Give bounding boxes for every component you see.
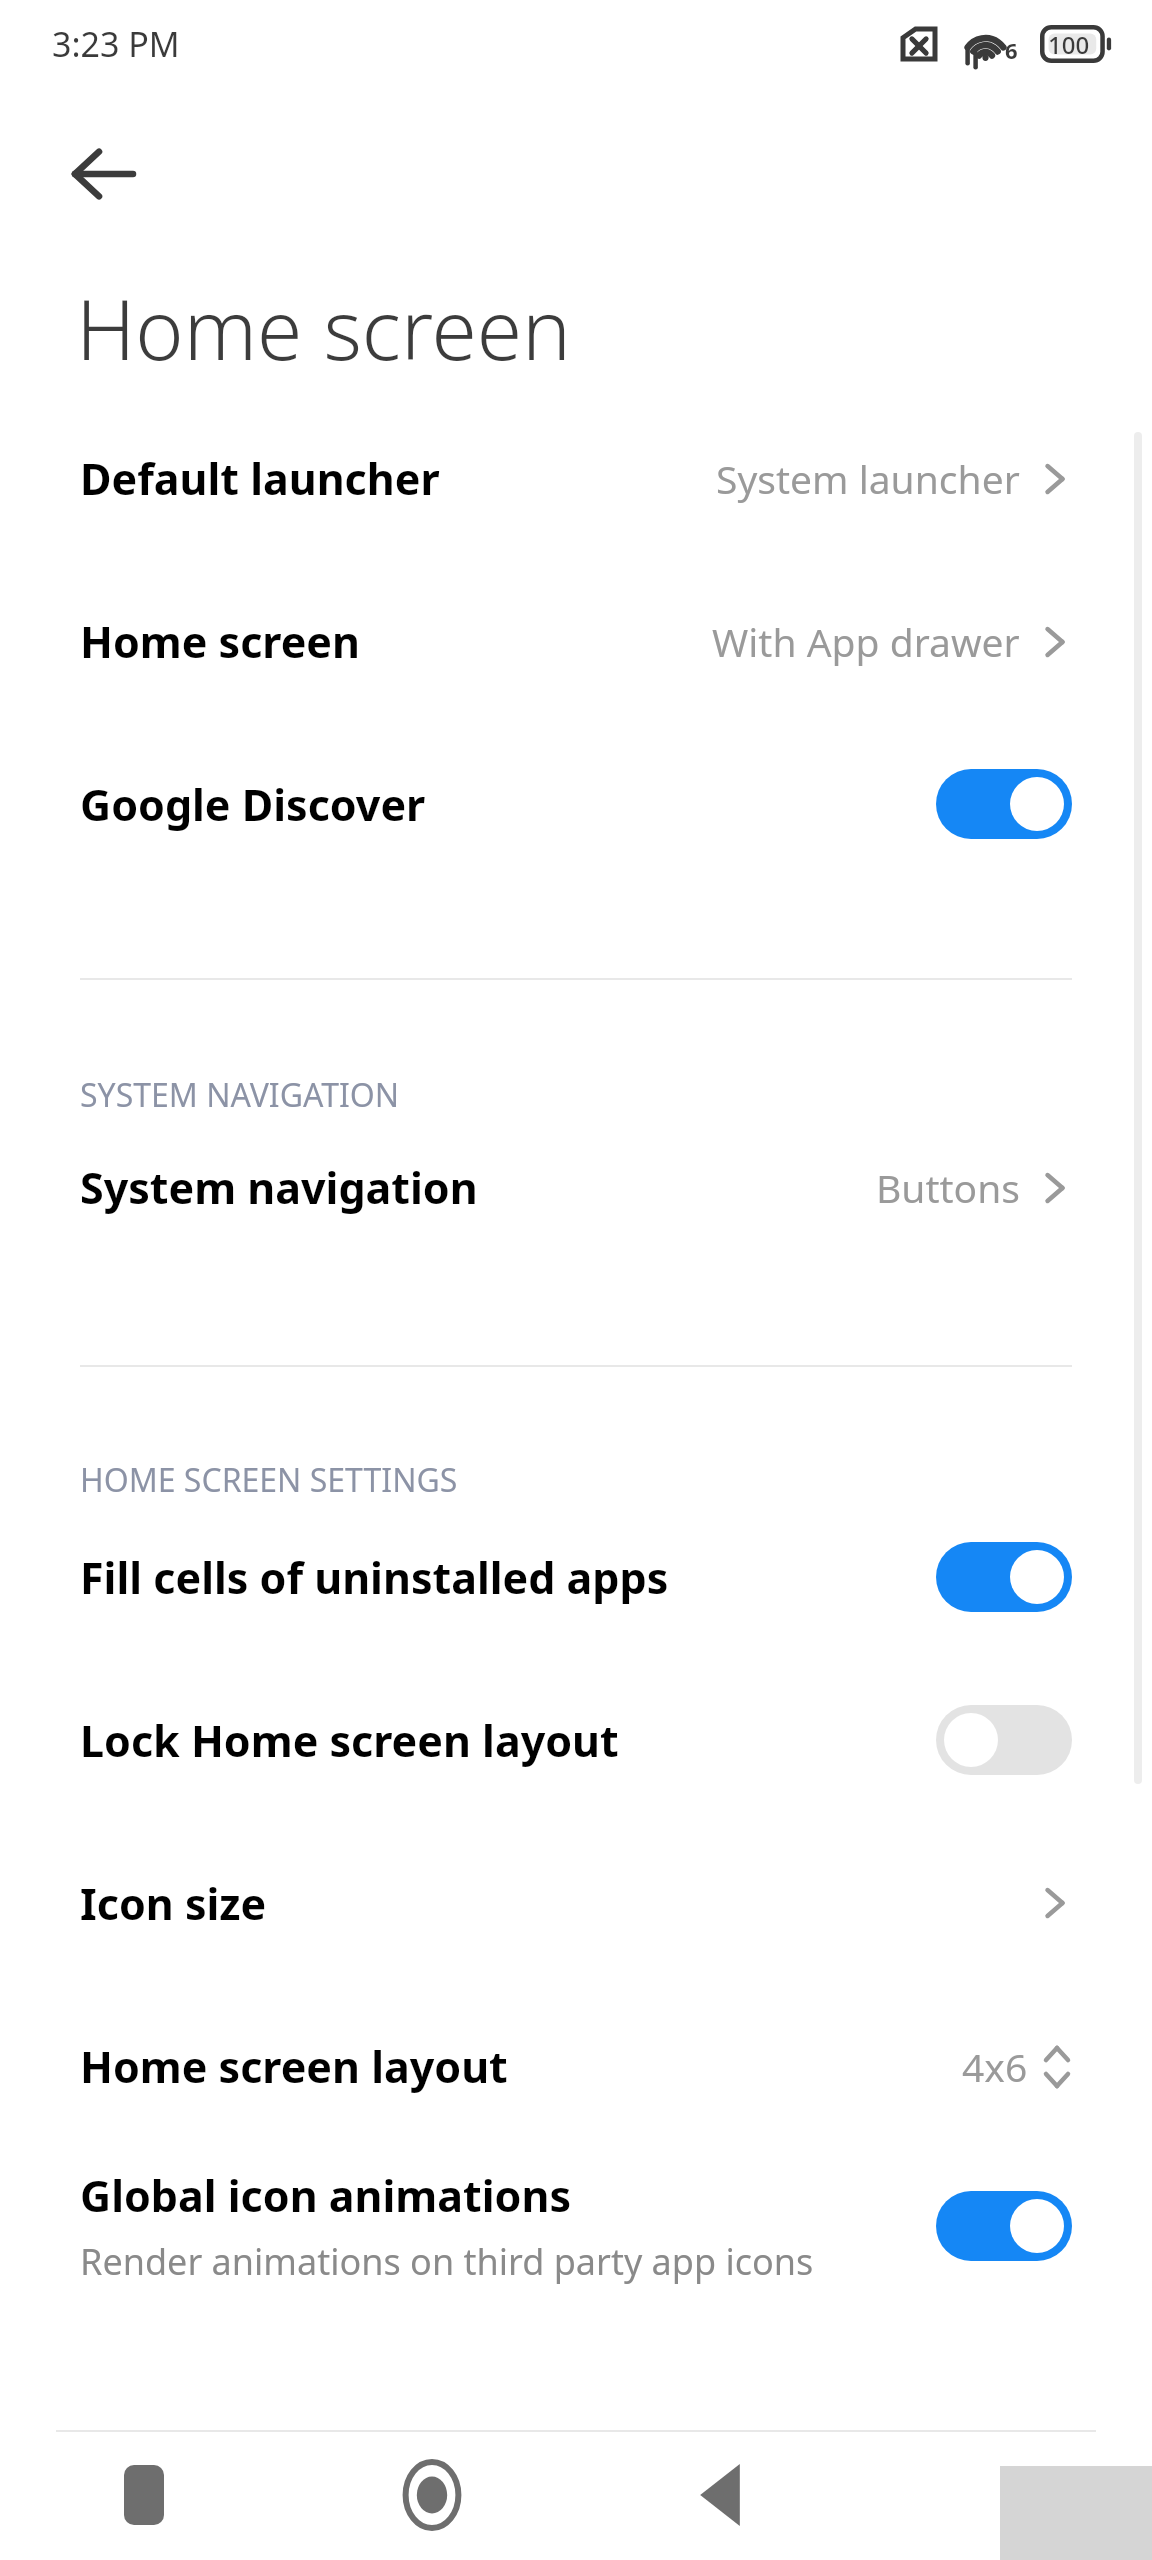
button[interactable]: On bbox=[936, 1542, 1072, 1612]
button[interactable]: Global icon animations bbox=[0, 2131, 1152, 2321]
staticText: System launcher bbox=[716, 452, 1020, 505]
staticText: Global icon animations bbox=[80, 2166, 571, 2225]
staticText: Render animations on third party app ico… bbox=[80, 2237, 814, 2286]
staticText: Fill cells of uninstalled apps bbox=[80, 1548, 669, 1607]
button[interactable]: On bbox=[936, 2191, 1072, 2261]
staticText: Home screen bbox=[76, 272, 571, 384]
staticText: 6 bbox=[1005, 35, 1018, 65]
button[interactable]: On bbox=[936, 769, 1072, 839]
staticText: Lock Home screen layout bbox=[80, 1711, 619, 1770]
button[interactable]: Back bbox=[576, 2430, 864, 2560]
staticText: Buttons bbox=[876, 1161, 1020, 1214]
staticText: 3:23 PM bbox=[52, 21, 180, 67]
button[interactable]: Google Discover bbox=[0, 729, 1152, 879]
button[interactable]: Back bbox=[48, 118, 160, 230]
button[interactable]: System navigation bbox=[0, 1112, 1152, 1262]
button[interactable]: Icon size bbox=[0, 1828, 1152, 1978]
button[interactable]: Recents bbox=[0, 2430, 288, 2560]
button[interactable]: Off bbox=[936, 1705, 1072, 1775]
staticText: 100 bbox=[1048, 28, 1090, 61]
staticText: 4x6 bbox=[962, 2040, 1028, 2093]
staticText: System navigation bbox=[80, 1158, 478, 1217]
staticText: Google Discover bbox=[80, 775, 426, 834]
button[interactable]: Lock Home screen layout bbox=[0, 1665, 1152, 1815]
button[interactable]: Default launcher bbox=[0, 403, 1152, 553]
staticText: Default launcher bbox=[80, 449, 440, 508]
staticText: Home screen layout bbox=[80, 2037, 508, 2096]
staticText: Icon size bbox=[80, 1874, 267, 1933]
button[interactable]: Home bbox=[288, 2430, 576, 2560]
staticText: Home screen bbox=[80, 612, 360, 671]
button[interactable]: Home screen bbox=[0, 566, 1152, 716]
button[interactable]: Fill cells of uninstalled apps bbox=[0, 1502, 1152, 1652]
staticText: SYSTEM NAVIGATION bbox=[80, 1073, 400, 1117]
staticText: With App drawer bbox=[712, 615, 1020, 668]
staticText: HOME SCREEN SETTINGS bbox=[80, 1458, 458, 1502]
button[interactable]: Home screen layout bbox=[0, 1991, 1152, 2141]
